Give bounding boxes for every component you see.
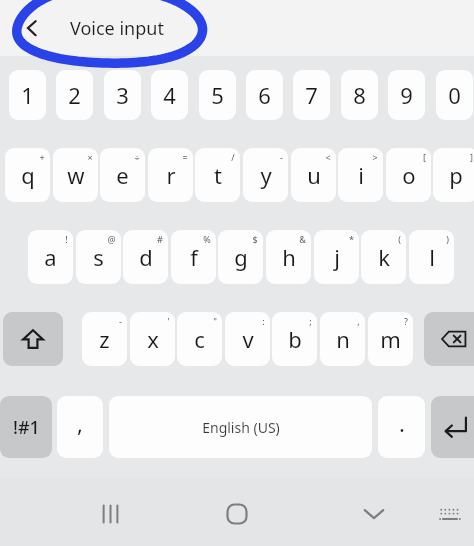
staticText: " — [213, 315, 217, 327]
staticText: 8 — [353, 80, 366, 110]
staticText: ) — [446, 233, 449, 245]
staticText: - — [280, 151, 283, 163]
staticText: 6 — [258, 80, 271, 110]
staticText: d — [139, 242, 153, 272]
staticText: ( — [398, 233, 401, 245]
staticText: , — [357, 315, 360, 327]
staticText: $ — [252, 233, 258, 245]
staticText: c — [194, 324, 205, 354]
button[interactable]: 3 — [104, 70, 141, 120]
button[interactable]: Back — [16, 12, 48, 44]
staticText: 9 — [400, 80, 413, 110]
button[interactable]: f — [171, 230, 216, 284]
staticText: 7 — [305, 80, 318, 110]
button[interactable]: a — [28, 230, 73, 284]
button[interactable]: Enter — [431, 396, 474, 458]
button[interactable]: q — [5, 148, 50, 202]
button[interactable]: u — [291, 148, 336, 202]
staticText: w — [67, 160, 85, 190]
button[interactable]: Home — [209, 490, 265, 538]
button[interactable]: m — [368, 312, 413, 366]
staticText: ÷ — [134, 151, 140, 163]
staticText: ] — [470, 151, 473, 163]
button[interactable]: Voice input — [70, 12, 164, 44]
staticText: ; — [309, 315, 312, 327]
staticText: [ — [423, 151, 426, 163]
button[interactable]: r — [148, 148, 193, 202]
button[interactable]: b — [272, 312, 317, 366]
button[interactable]: English (US) — [109, 396, 372, 458]
staticText: s — [93, 242, 104, 272]
staticText: k — [378, 242, 390, 272]
staticText: f — [190, 242, 198, 272]
button[interactable]: !#1 — [0, 396, 52, 458]
button[interactable]: s — [76, 230, 121, 284]
button[interactable]: p — [433, 148, 474, 202]
button[interactable]: o — [386, 148, 431, 202]
staticText: n — [336, 324, 350, 354]
staticText: 4 — [163, 80, 176, 110]
staticText: p — [449, 160, 463, 190]
staticText: 5 — [211, 80, 224, 110]
button[interactable]: 0 — [436, 70, 473, 120]
button[interactable]: v — [225, 312, 270, 366]
button[interactable]: n — [320, 312, 365, 366]
button[interactable]: Recent apps — [84, 490, 140, 538]
staticText: g — [234, 242, 248, 272]
button[interactable]: i — [338, 148, 383, 202]
staticText: , — [77, 408, 83, 438]
staticText: = — [182, 151, 188, 163]
button[interactable]: k — [361, 230, 406, 284]
staticText: English (US) — [202, 418, 280, 437]
button[interactable]: e — [100, 148, 145, 202]
staticText: z — [99, 324, 110, 354]
button[interactable]: h — [266, 230, 311, 284]
staticText: b — [288, 324, 302, 354]
staticText: × — [87, 151, 93, 163]
button[interactable]: 8 — [341, 70, 378, 120]
staticText: . — [399, 408, 405, 438]
staticText: < — [325, 151, 331, 163]
staticText: u — [307, 160, 321, 190]
staticText: l — [429, 242, 435, 272]
staticText: 2 — [68, 80, 81, 110]
button[interactable]: 5 — [199, 70, 236, 120]
button[interactable]: Backspace — [424, 312, 474, 366]
button[interactable]: 1 — [9, 70, 46, 120]
staticText: v — [242, 324, 254, 354]
staticText: !#1 — [13, 415, 40, 440]
button[interactable]: Hide keyboard — [348, 490, 400, 538]
staticText: ! — [65, 233, 68, 245]
button[interactable]: d — [123, 230, 168, 284]
staticText: & — [299, 233, 306, 245]
staticText: q — [21, 160, 35, 190]
button[interactable]: y — [243, 148, 288, 202]
button[interactable]: j — [314, 230, 359, 284]
button[interactable]: Change keyboard — [428, 492, 472, 536]
button[interactable]: c — [177, 312, 222, 366]
button[interactable]: 2 — [56, 70, 93, 120]
button[interactable]: t — [195, 148, 240, 202]
staticText: 0 — [448, 80, 461, 110]
staticText: > — [372, 151, 378, 163]
staticText: - — [119, 315, 122, 327]
button[interactable]: , — [57, 396, 103, 458]
button[interactable]: 7 — [293, 70, 330, 120]
staticText: 1 — [21, 80, 34, 110]
staticText: o — [402, 160, 416, 190]
staticText: Voice input — [70, 16, 164, 41]
button[interactable]: Shift — [3, 312, 63, 366]
button[interactable]: x — [130, 312, 175, 366]
button[interactable]: z — [82, 312, 127, 366]
button[interactable]: l — [409, 230, 454, 284]
button[interactable]: g — [218, 230, 263, 284]
staticText: @ — [107, 233, 116, 245]
staticText: * — [349, 233, 354, 245]
button[interactable]: 9 — [388, 70, 425, 120]
staticText: r — [166, 160, 176, 190]
button[interactable]: 6 — [246, 70, 283, 120]
button[interactable]: 4 — [151, 70, 188, 120]
staticText: e — [116, 160, 129, 190]
button[interactable]: w — [53, 148, 98, 202]
button[interactable]: . — [378, 396, 425, 458]
